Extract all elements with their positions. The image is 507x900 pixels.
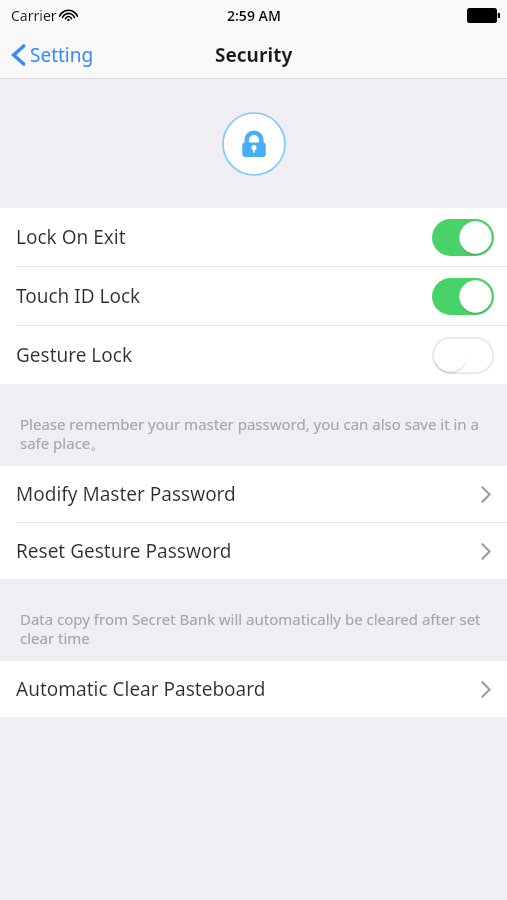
button[interactable]: Gesture Lock xyxy=(0,326,507,384)
staticText: Modify Master Password xyxy=(16,481,481,507)
staticText: Setting xyxy=(30,42,94,68)
button[interactable]: Automatic Clear Pasteboard xyxy=(0,661,507,717)
staticText: 2:59 AM xyxy=(227,6,281,25)
staticText: Lock On Exit xyxy=(16,224,432,250)
staticText: Gesture Lock xyxy=(16,342,432,368)
staticText: Touch ID Lock xyxy=(16,283,432,309)
button[interactable]: Reset Gesture Password xyxy=(0,523,507,579)
staticText: Please remember your master password, yo… xyxy=(20,414,479,453)
staticText: Data copy from Secret Bank will automati… xyxy=(20,609,481,648)
staticText: Carrier xyxy=(11,6,57,25)
button[interactable]: Enabled xyxy=(432,278,494,315)
button[interactable]: Modify Master Password xyxy=(0,466,507,522)
button[interactable]: Lock On Exit xyxy=(0,208,507,266)
staticText: Security xyxy=(215,42,293,68)
button[interactable]: Setting xyxy=(0,34,106,76)
button[interactable]: Disabled xyxy=(432,337,494,374)
button[interactable]: Touch ID Lock xyxy=(0,267,507,325)
staticText: Reset Gesture Password xyxy=(16,538,481,564)
button[interactable]: Enabled xyxy=(432,219,494,256)
staticText: Automatic Clear Pasteboard xyxy=(16,676,481,702)
